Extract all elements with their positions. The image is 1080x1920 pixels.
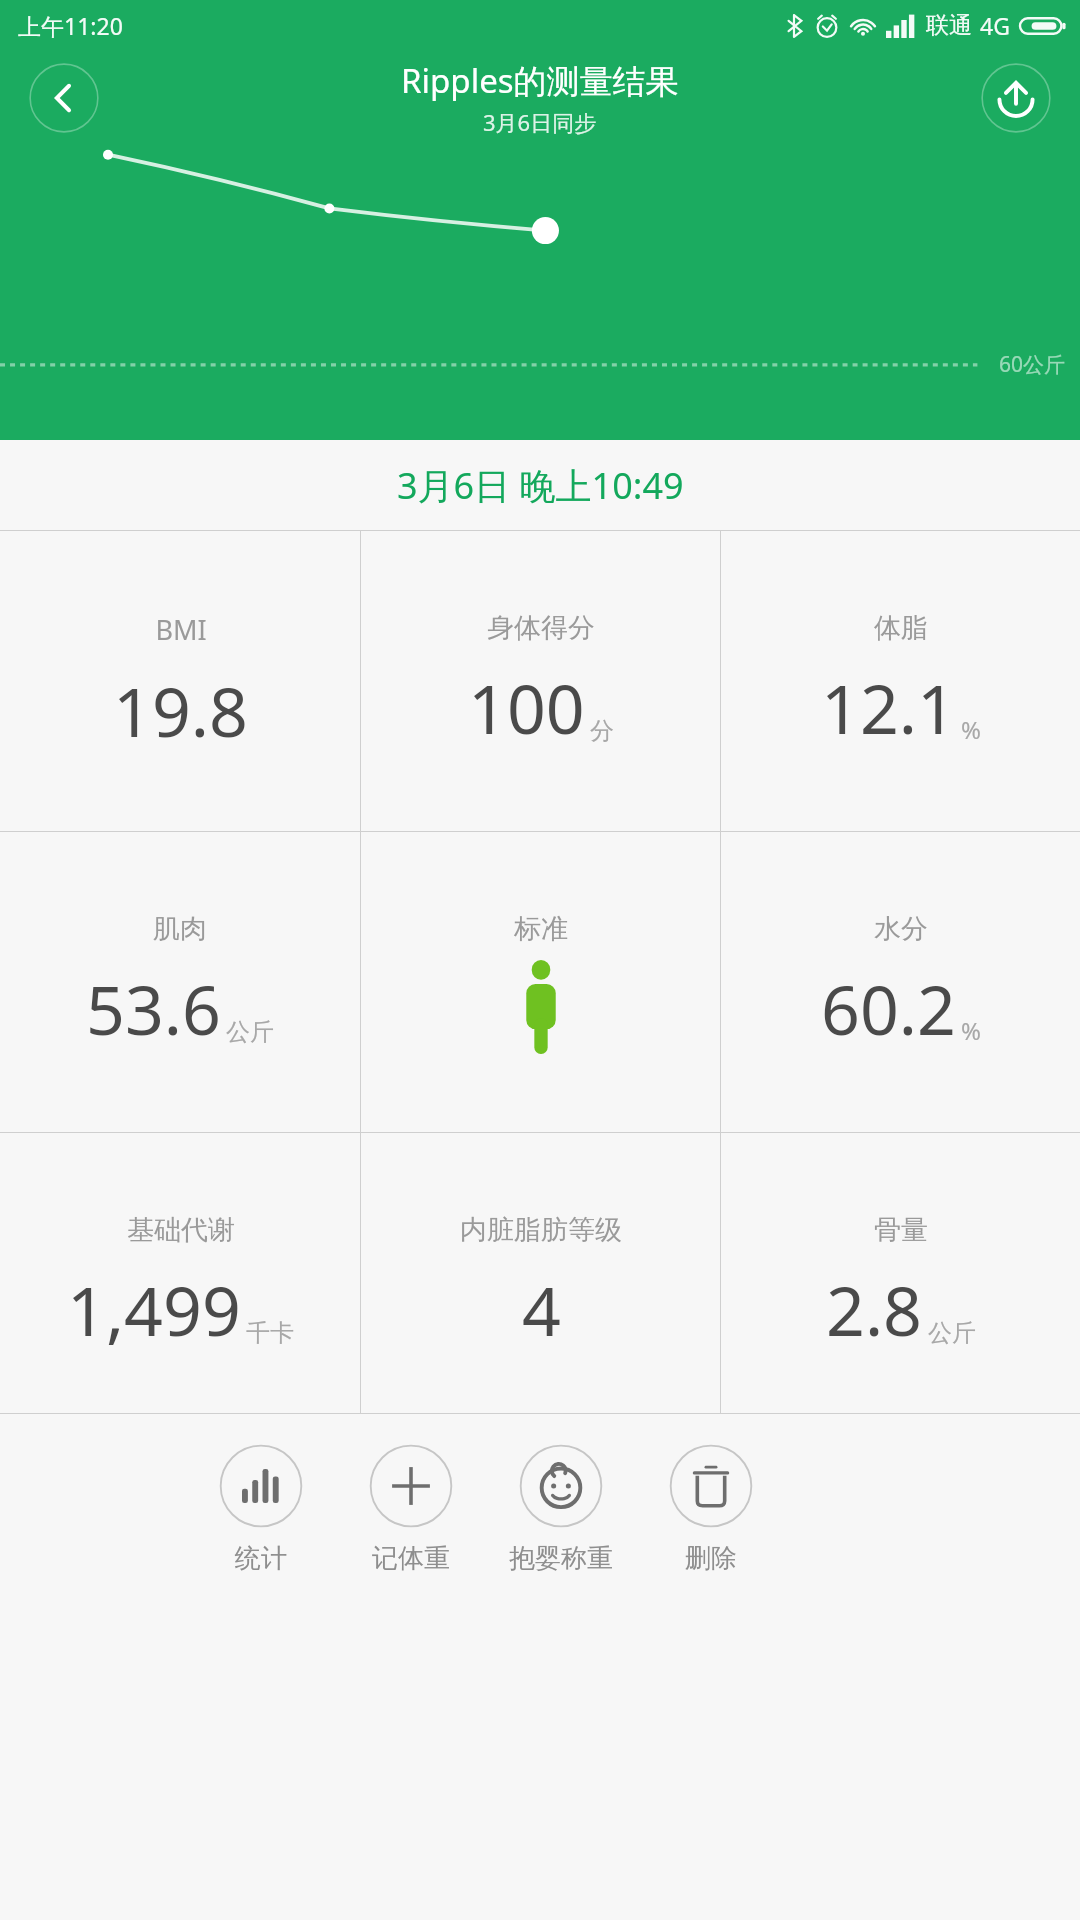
staticText: 4G [980, 10, 1010, 41]
staticText: 骨量 [874, 1213, 928, 1247]
button[interactable]: 身体得分 [361, 531, 720, 831]
staticText: 身体得分 [487, 611, 595, 645]
staticText: 12.1 [821, 661, 956, 754]
staticText: 水分 [874, 912, 928, 946]
staticText: 公斤 [928, 1318, 976, 1348]
button[interactable]: 基础代谢 [0, 1133, 360, 1413]
staticText: 1,499 [67, 1263, 241, 1356]
button[interactable]: 体脂 [721, 531, 1080, 831]
button[interactable]: 删除 [636, 1438, 786, 1581]
button[interactable]: BMI [0, 531, 360, 831]
staticText: 抱婴称重 [509, 1542, 613, 1575]
staticText: 60.2 [821, 962, 956, 1055]
button[interactable]: Share [980, 62, 1052, 134]
staticText: 内脏脂肪等级 [460, 1213, 622, 1247]
staticText: 3月6日 晚上10:49 [397, 461, 684, 510]
button[interactable]: 记体重 [336, 1438, 486, 1581]
staticText: 基础代谢 [127, 1213, 235, 1247]
staticText: 19.8 [113, 664, 248, 757]
staticText: 100 [468, 661, 585, 754]
staticText: 53.6 [86, 962, 221, 1055]
button[interactable]: 标准体型 [361, 832, 720, 1132]
staticText: 删除 [685, 1542, 737, 1575]
staticText: 上午11:20 [18, 10, 123, 41]
staticText: 体脂 [874, 611, 928, 645]
staticText: 60公斤 [999, 350, 1066, 379]
staticText: 记体重 [372, 1542, 450, 1575]
staticText: 千卡 [246, 1318, 294, 1348]
button[interactable]: 肌肉 [0, 832, 360, 1132]
button[interactable]: 抱婴称重 [486, 1438, 636, 1581]
button[interactable]: 统计 [186, 1438, 336, 1581]
button[interactable]: 水分 [721, 832, 1080, 1132]
staticText: BMI [155, 611, 207, 648]
staticText: 公斤 [226, 1017, 274, 1047]
staticText: Ripples的测量结果 [401, 58, 679, 103]
staticText: 联通 [926, 11, 972, 40]
staticText: 标准 [514, 912, 568, 946]
staticText: 肌肉 [153, 912, 207, 946]
staticText: 3月6日同步 [483, 107, 597, 137]
button[interactable]: Back [28, 62, 100, 134]
staticText: 2.8 [826, 1263, 923, 1356]
staticText: % [961, 1014, 981, 1047]
button[interactable]: 内脏脂肪等级 [361, 1133, 720, 1413]
staticText: 统计 [235, 1542, 287, 1575]
staticText: 4 [522, 1263, 561, 1356]
staticText: 分 [590, 716, 614, 746]
staticText: % [961, 713, 981, 746]
button[interactable]: 骨量 [721, 1133, 1080, 1413]
